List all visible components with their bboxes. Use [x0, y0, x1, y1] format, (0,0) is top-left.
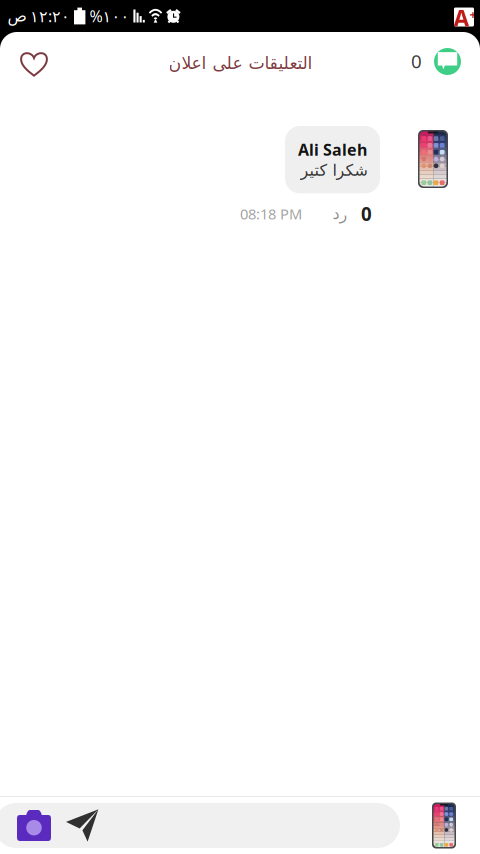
staticText: Ali Saleh [298, 139, 367, 160]
staticText: + [469, 6, 476, 22]
staticText: ص [7, 7, 26, 25]
staticText: 08:18 PM [240, 204, 302, 224]
staticText: شكرا كتير [300, 161, 367, 179]
staticText: التعليقات على اعلان [168, 53, 312, 73]
staticText: %١٠٠ [89, 5, 129, 27]
button[interactable]: Camera [13, 805, 55, 846]
staticText: A [453, 3, 469, 33]
staticText: رد [332, 205, 347, 223]
button[interactable]: Comments [370, 34, 480, 93]
staticText: 0 [361, 201, 372, 226]
button[interactable]: Like [0, 33, 80, 95]
button[interactable]: رد [328, 202, 351, 226]
staticText: ١٢:٢٠ [30, 5, 70, 27]
button[interactable]: Send [62, 805, 102, 846]
staticText: 0 [411, 49, 422, 73]
